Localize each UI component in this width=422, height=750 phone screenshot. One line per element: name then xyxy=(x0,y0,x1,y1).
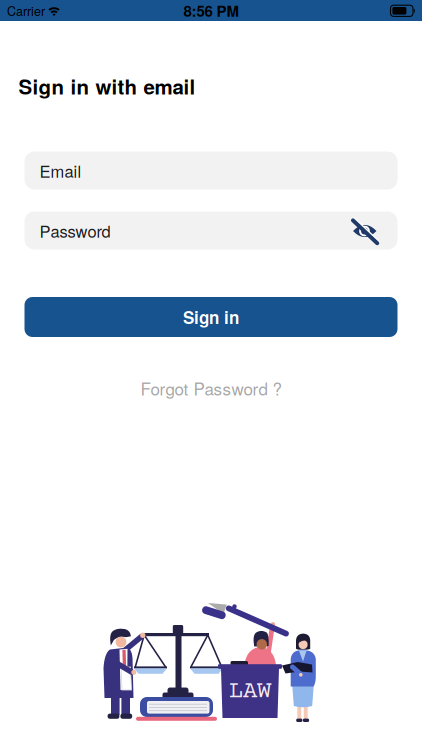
staticText: Forgot Password ? xyxy=(140,376,281,400)
staticText: Sign in xyxy=(183,305,239,329)
staticText: LAW xyxy=(229,678,271,705)
button[interactable]: Sign in xyxy=(24,297,397,337)
button[interactable]: Password xyxy=(24,211,397,249)
button[interactable]: Email xyxy=(24,151,397,189)
button[interactable]: Forgot Password ? xyxy=(0,376,422,400)
staticText: Sign in with email xyxy=(18,71,195,101)
staticText: Carrier xyxy=(7,2,45,19)
staticText: 8:56 PM xyxy=(183,0,238,21)
staticText: Email xyxy=(39,159,81,182)
staticText: Password xyxy=(39,219,110,242)
